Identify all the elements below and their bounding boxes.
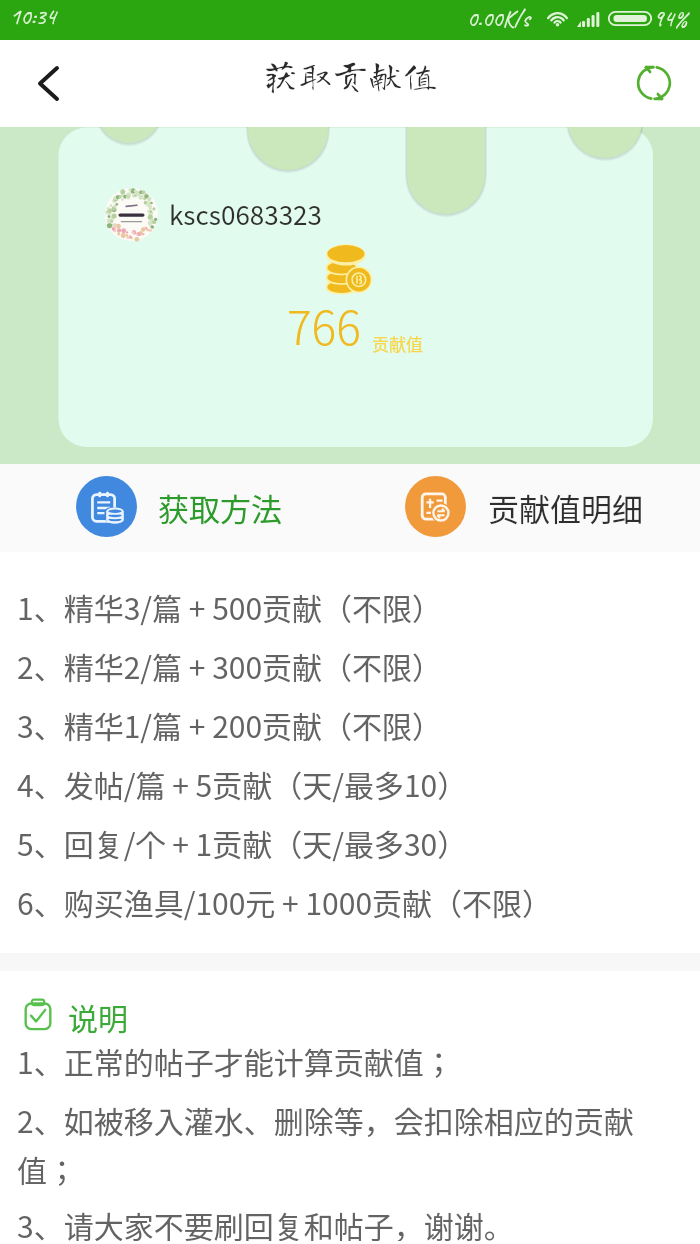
staticText: 3、请大家不要刷回复和帖子，谢谢。 — [17, 1203, 514, 1241]
staticText: kscs0683323 — [169, 195, 322, 233]
staticText: 说明 — [68, 995, 128, 1038]
button[interactable]: Refresh — [611, 39, 697, 126]
staticText: 6、购买渔具/100元 + 1000贡献（不限） — [17, 880, 553, 923]
staticText: 贡献值 — [372, 331, 423, 356]
button[interactable]: Back — [5, 40, 91, 127]
staticText: 94% — [653, 4, 688, 33]
staticText: 5、回复/个 + 1贡献（天/最多30） — [17, 821, 468, 864]
staticText: 1、精华3/篇 + 500贡献（不限） — [17, 585, 443, 628]
staticText: 766 — [287, 292, 361, 359]
staticText: 贡献值明细 — [488, 485, 643, 530]
staticText: 获取贡献值 — [263, 57, 439, 92]
staticText: 3、精华1/篇 + 200贡献（不限） — [17, 703, 443, 746]
staticText: 获取方法 — [158, 485, 282, 530]
staticText: 4、发帖/篇 + 5贡献（天/最多10） — [17, 762, 468, 805]
staticText: 10:34 — [10, 2, 56, 31]
staticText: 1、正常的帖子才能计算贡献值； — [17, 1039, 454, 1082]
button[interactable]: 获取方法 — [76, 476, 282, 537]
staticText: 0.00K/s — [467, 4, 530, 33]
button[interactable]: 贡献值明细 — [405, 476, 643, 537]
staticText: 2、如被移入灌水、删除等，会扣除相应的贡献值； — [17, 1098, 688, 1191]
staticText: 2、精华2/篇 + 300贡献（不限） — [17, 644, 443, 687]
